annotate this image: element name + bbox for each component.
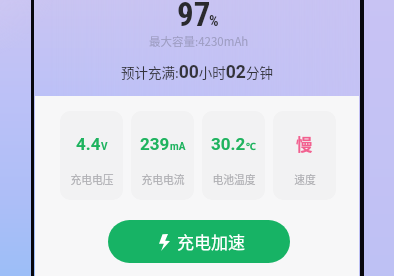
button[interactable]: 充电加速	[108, 220, 290, 263]
staticText: 速度	[294, 171, 316, 187]
staticText: mA	[170, 141, 186, 153]
staticText: 预计充满:00小时02分钟	[121, 62, 273, 83]
staticText: 4.4	[76, 134, 101, 154]
button[interactable]: 4.4	[60, 111, 123, 200]
staticText: 电池温度	[212, 171, 256, 187]
staticText: 充电电流	[141, 171, 185, 187]
staticText: 充电电压	[70, 171, 114, 187]
staticText: 30.2	[211, 134, 246, 154]
staticText: 慢	[296, 132, 313, 156]
button[interactable]: 慢	[273, 111, 336, 200]
staticText: 239	[140, 134, 170, 154]
button[interactable]: 239	[131, 111, 194, 200]
staticText: 充电加速	[177, 229, 245, 254]
staticText: %	[209, 12, 219, 30]
staticText: 最大容量:4230mAh	[149, 33, 249, 50]
staticText: ℃	[246, 139, 257, 153]
staticText: 97	[177, 0, 211, 34]
staticText: V	[101, 141, 108, 153]
button[interactable]: 30.2	[202, 111, 265, 200]
